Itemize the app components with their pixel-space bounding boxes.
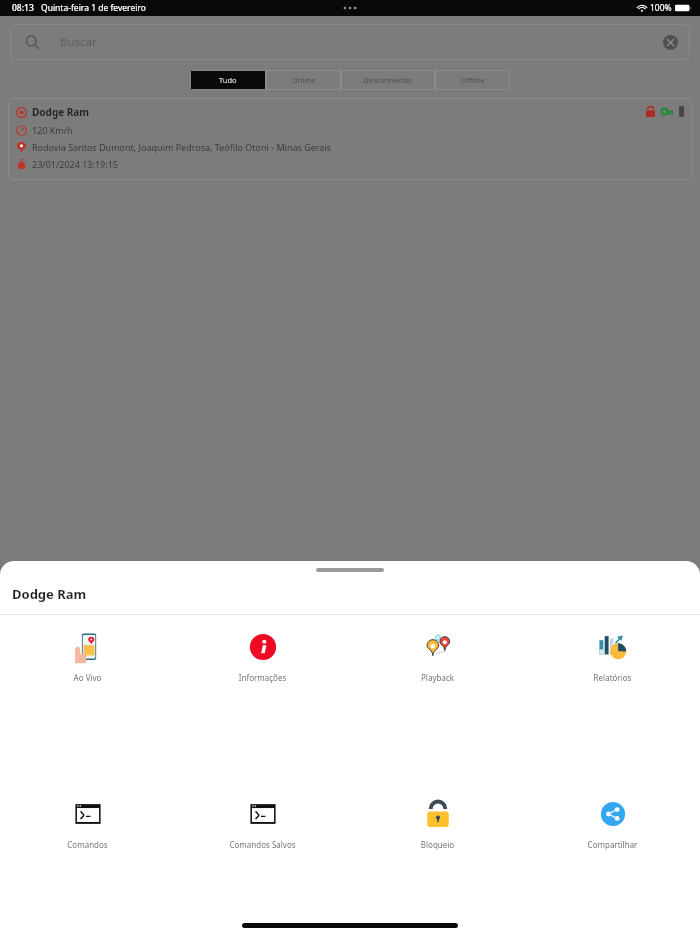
staticText: Compartilhar (525, 839, 700, 850)
staticText: 08:13 (12, 2, 34, 14)
button[interactable]: Bloqueio (350, 797, 525, 850)
staticText: Bloqueio (350, 839, 525, 850)
staticText: 23/01/2024 13:19:15 (32, 158, 118, 170)
staticText: Dodge Ram (32, 105, 90, 119)
staticText: Rodovia Santos Dumont, Joaquim Pedrosa, … (32, 141, 332, 153)
staticText: Buscar (60, 34, 97, 50)
button[interactable]: Tudo (190, 70, 266, 90)
button[interactable]: Dodge Ram (8, 98, 692, 180)
button[interactable]: Compartilhar (525, 797, 700, 850)
button[interactable]: Offline (435, 70, 510, 90)
staticText: Quinta-feira 1 de fevereiro (41, 2, 146, 14)
button[interactable]: Comandos (0, 797, 175, 850)
button[interactable]: Relatórios (525, 630, 700, 683)
staticText: 100% (650, 2, 672, 14)
button[interactable]: Buscar (10, 24, 690, 60)
staticText: Informações (175, 672, 350, 683)
button[interactable]: Comandos Salvos (175, 797, 350, 850)
button[interactable]: Desconhecido (341, 70, 435, 90)
staticText: Ao Vivo (0, 672, 175, 683)
button[interactable]: Online (266, 70, 341, 90)
staticText: Comandos (0, 839, 175, 850)
staticText: Online (292, 75, 316, 85)
button[interactable]: Limpar (663, 35, 678, 50)
staticText: Comandos Salvos (175, 839, 350, 850)
button[interactable]: Ao Vivo (0, 630, 175, 683)
staticText: Playback (350, 672, 525, 683)
staticText: Dodge Ram (12, 585, 87, 603)
staticText: 120 Km/h (32, 124, 73, 136)
staticText: Desconhecido (363, 75, 413, 85)
button[interactable]: Informações (175, 630, 350, 683)
other: Buscar (25, 35, 40, 50)
staticText: Offline (461, 75, 485, 85)
button[interactable]: Playback (350, 630, 525, 683)
staticText: Tudo (219, 75, 237, 85)
staticText: Relatórios (525, 672, 700, 683)
